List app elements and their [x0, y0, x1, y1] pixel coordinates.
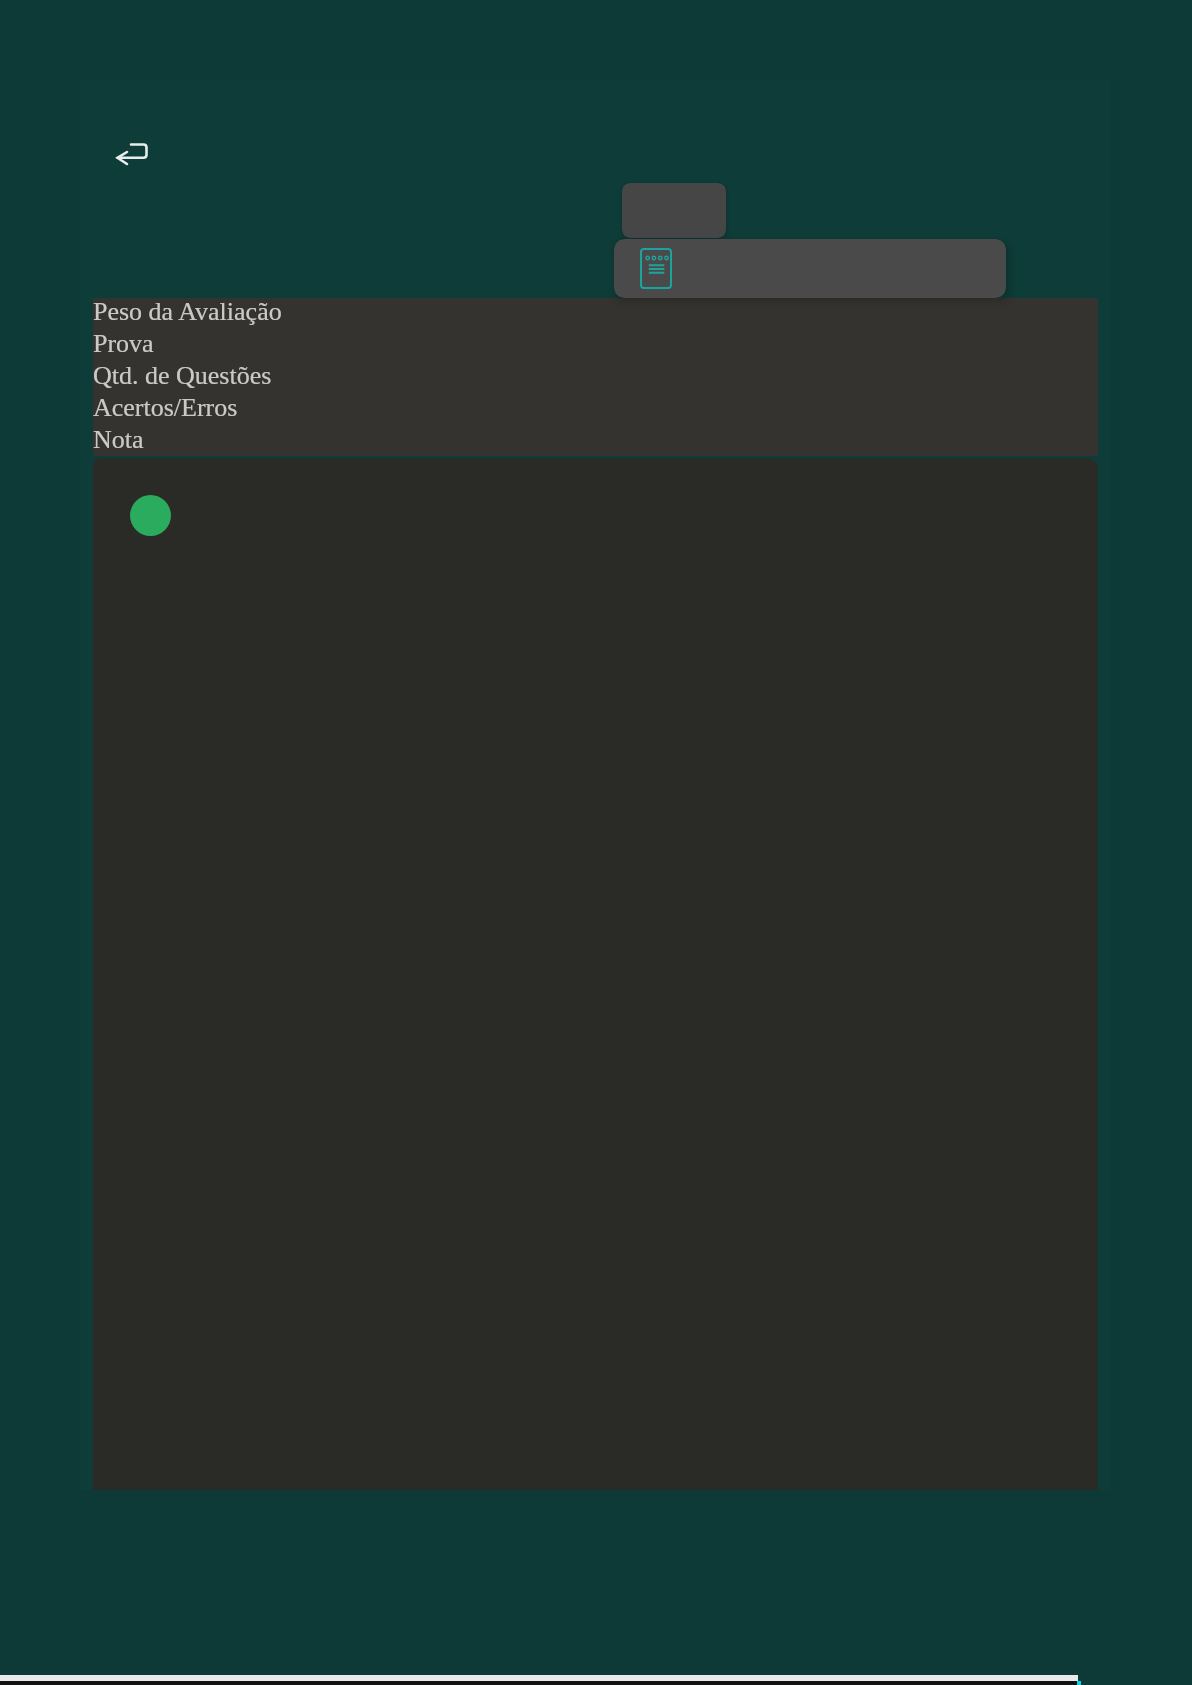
- button[interactable]: [130, 495, 171, 536]
- button[interactable]: [614, 239, 1006, 298]
- staticText: Acertos/Erros: [93, 393, 238, 425]
- staticText: Qtd. de Questões: [93, 361, 272, 393]
- staticText: Peso da Avaliação: [93, 297, 282, 329]
- button[interactable]: [622, 183, 726, 238]
- staticText: Nota: [93, 425, 144, 455]
- button[interactable]: [105, 131, 159, 177]
- staticText: Prova: [93, 329, 154, 361]
